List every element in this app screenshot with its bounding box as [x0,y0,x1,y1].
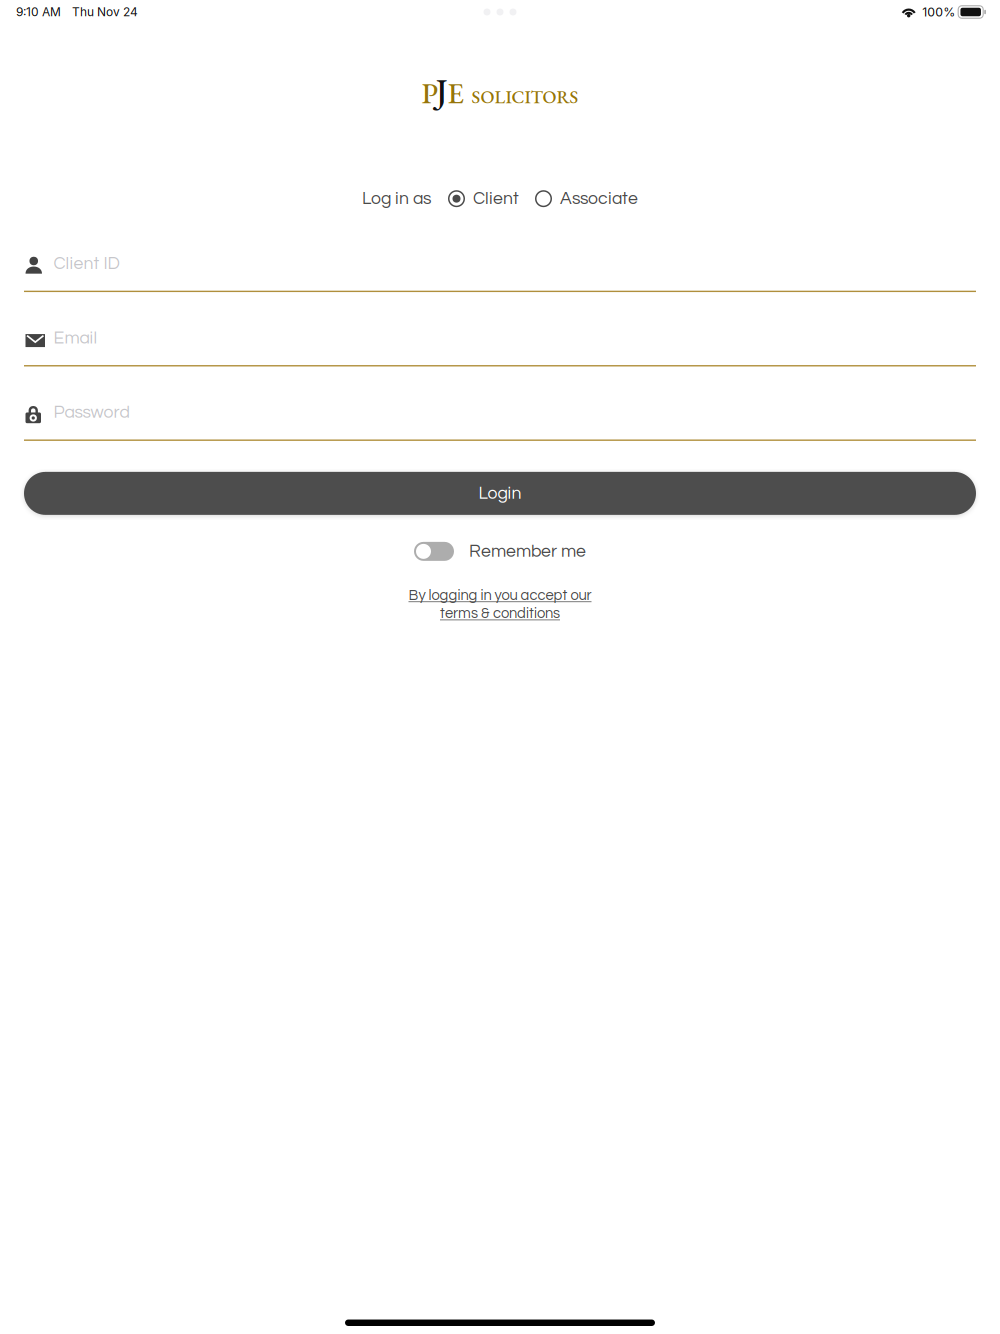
staticText: Password [53,403,129,421]
staticText: Remember me [469,542,586,560]
staticText: Client ID [53,255,119,273]
staticText: SOLICITORS [471,85,578,109]
staticText: J [435,68,447,114]
staticText: By logging in you accept our [408,588,591,603]
button[interactable]: By logging in you accept our [408,588,591,621]
button[interactable]: Client [448,190,519,208]
staticText: Thu Nov 24 [72,5,138,19]
button[interactable]: Login [24,472,976,515]
button[interactable]: Remember me [414,542,586,561]
staticText: Associate [560,190,638,208]
staticText: Login [478,484,521,502]
staticText: P [421,74,438,112]
button[interactable]: Associate [535,190,638,208]
staticText: 9:10 AM [16,5,61,19]
staticText: 100% [922,5,955,19]
staticText: terms & conditions [440,606,560,621]
staticText: Email [53,329,97,347]
staticText: Log in as [362,190,431,208]
staticText: Client [473,190,519,208]
staticText: E [447,74,463,112]
